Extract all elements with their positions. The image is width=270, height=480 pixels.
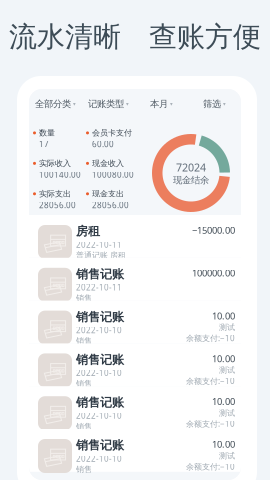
staticText: 销售: [76, 422, 92, 431]
staticText: 余额支付:−10: [186, 418, 235, 429]
button[interactable]: 销售记账: [29, 429, 241, 472]
staticText: 房租: [76, 224, 100, 239]
staticText: 17: [39, 139, 49, 149]
staticText: 普通记账 房租: [76, 250, 126, 260]
staticText: 销售: [76, 379, 92, 389]
button[interactable]: 房租: [29, 215, 241, 258]
staticText: 销售记账: [76, 310, 124, 324]
staticText: 100000.00: [192, 267, 235, 279]
button[interactable]: 全部分类: [29, 97, 82, 111]
staticText: −15000.00: [192, 224, 235, 236]
button[interactable]: 销售记账: [29, 258, 241, 301]
staticText: 测试: [219, 322, 235, 332]
staticText: 销售记账: [76, 352, 124, 367]
staticText: 60.00: [92, 139, 114, 149]
button[interactable]: 销售记账: [29, 386, 241, 429]
button[interactable]: 销售记账: [29, 343, 241, 386]
staticText: ▾: [170, 101, 173, 107]
staticText: 10.00: [212, 395, 235, 408]
staticText: 现金收入: [92, 158, 124, 168]
staticText: 实际收入: [39, 158, 71, 168]
staticText: 28056.00: [39, 200, 76, 210]
button[interactable]: 筛选: [188, 97, 241, 111]
staticText: 余额支付:−10: [186, 333, 235, 343]
staticText: 2022-10-10: [76, 325, 122, 335]
button[interactable]: 销售记账: [29, 301, 241, 343]
staticText: 2022-10-11: [76, 282, 122, 293]
staticText: 筛选: [203, 98, 221, 110]
staticText: 实际支出: [39, 189, 71, 199]
staticText: ▾: [223, 101, 226, 107]
button[interactable]: 本月: [135, 97, 188, 111]
staticText: 2022-10-10: [76, 368, 122, 378]
staticText: 现金支出: [92, 189, 124, 199]
staticText: 72024: [176, 160, 206, 174]
staticText: 测试: [219, 365, 235, 375]
staticText: 10.00: [212, 438, 235, 450]
staticText: 余额支付:−10: [186, 376, 235, 386]
staticText: 数量: [39, 128, 55, 138]
staticText: 会员卡支付: [92, 128, 132, 138]
staticText: 记账类型: [88, 98, 124, 110]
staticText: 销售记账: [76, 267, 124, 281]
staticText: 10.00: [212, 310, 235, 322]
staticText: 测试: [219, 451, 235, 461]
staticText: 流水清晰 查账方便: [9, 20, 261, 54]
staticText: ▾: [126, 101, 129, 107]
staticText: 销售记账: [76, 395, 124, 410]
staticText: 余额支付:−10: [186, 461, 235, 472]
staticText: 销售: [76, 293, 92, 303]
staticText: 本月: [150, 98, 168, 110]
staticText: 100140.00: [39, 169, 81, 180]
staticText: 销售记账: [76, 438, 124, 453]
staticText: 28056.00: [92, 200, 129, 210]
staticText: 10.00: [212, 352, 235, 365]
staticText: 2022-10-10: [76, 453, 122, 464]
button[interactable]: 记账类型: [82, 97, 135, 111]
staticText: 2022-10-11: [76, 239, 122, 250]
staticText: 销售: [76, 336, 92, 346]
staticText: ▾: [73, 101, 76, 107]
staticText: 现金结余: [173, 174, 209, 186]
staticText: 销售: [76, 464, 92, 474]
staticText: 2022-10-10: [76, 410, 122, 421]
staticText: 全部分类: [35, 98, 71, 110]
staticText: 100080.00: [92, 169, 134, 180]
staticText: 测试: [219, 408, 235, 418]
